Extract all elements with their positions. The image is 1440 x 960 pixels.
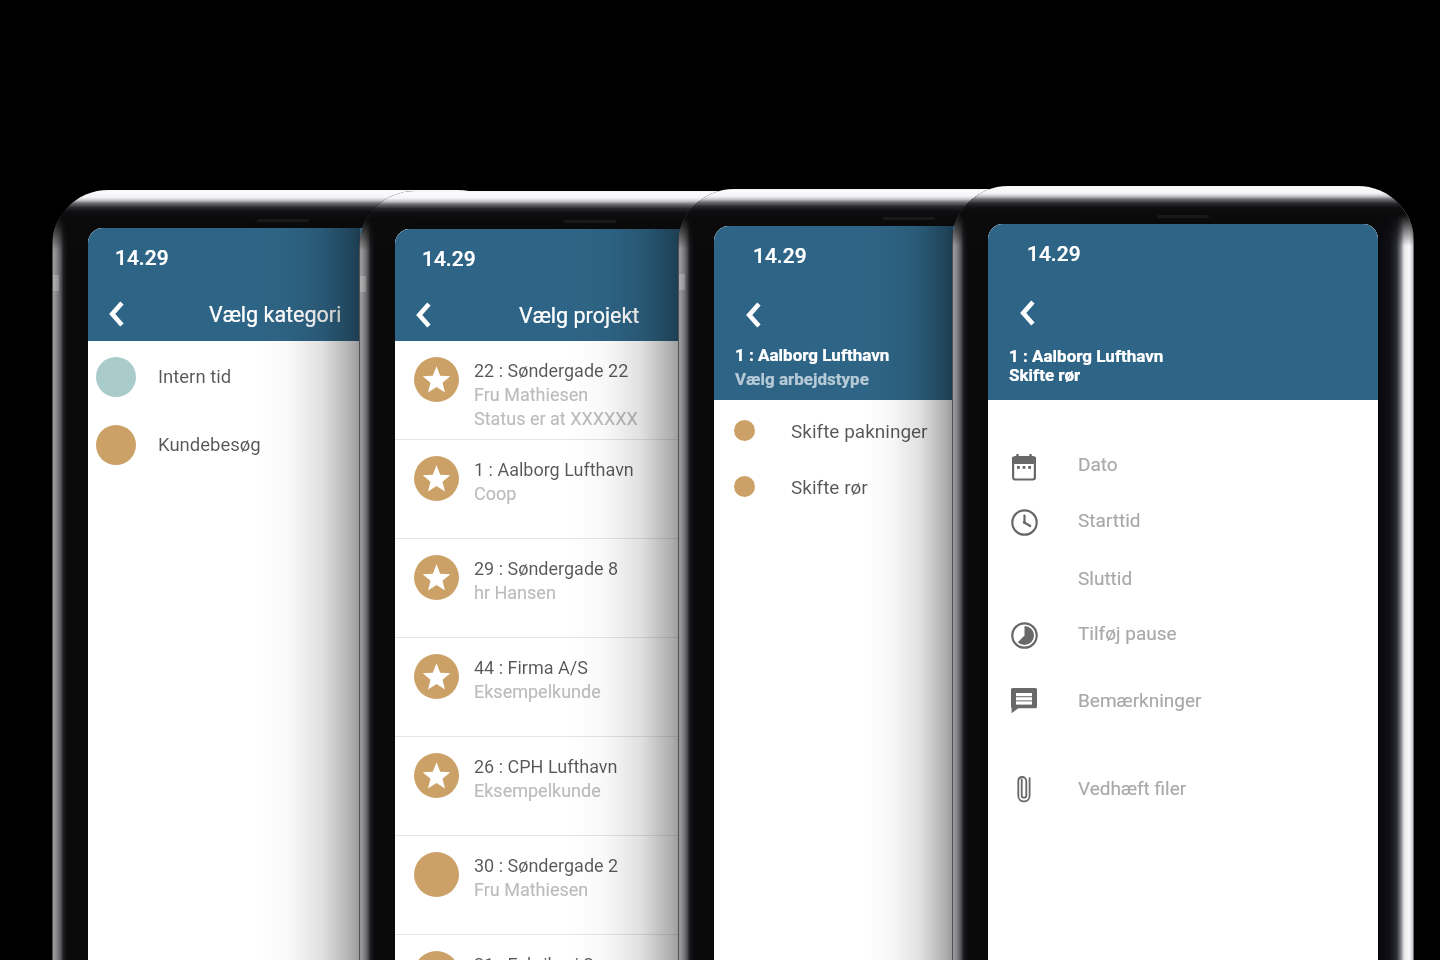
button[interactable]: Dato [988, 436, 1378, 492]
staticText: Eksempelkunde [474, 681, 601, 702]
staticText: Dato [1078, 453, 1118, 475]
staticText: Skifte pakninger [791, 420, 928, 442]
staticText: Vælg projekt [519, 303, 640, 328]
staticText: 14.29 [1027, 242, 1081, 267]
staticText: Vælg arbejdstype [735, 369, 869, 389]
staticText: Intern tid [158, 366, 232, 388]
staticText: Tilføj pause [1078, 622, 1177, 644]
staticText: 44 : Firma A/S [474, 657, 588, 678]
button[interactable]: Back [94, 286, 139, 342]
button[interactable]: Skifte rør [714, 458, 1104, 515]
staticText: Coop [474, 483, 517, 504]
staticText: 14.29 [115, 246, 169, 271]
staticText: 14.29 [753, 244, 807, 269]
button[interactable]: 30 : Søndergade 2 [395, 836, 785, 935]
staticText: 26 : CPH Lufthavn [474, 756, 618, 777]
staticText: Skifte rør [1009, 365, 1081, 385]
staticText: 22 : Søndergade 22 [474, 360, 629, 381]
button[interactable]: Starttid [988, 492, 1378, 548]
button[interactable]: Back [1005, 285, 1050, 341]
staticText: Fru Mathiesen [474, 384, 589, 405]
staticText: 1 : Aalborg Lufthavn [474, 459, 634, 480]
button[interactable]: 31 : Fabrikvej 3 [395, 935, 785, 960]
button[interactable]: 22 : Søndergade 22 [395, 341, 785, 440]
button[interactable]: Back [401, 287, 446, 343]
staticText: 29 : Søndergade 8 [474, 558, 619, 579]
button[interactable]: Kundebesøg [88, 411, 478, 479]
staticText: Skifte rør [791, 476, 868, 498]
button[interactable]: 44 : Firma A/S [395, 638, 785, 737]
button[interactable]: 26 : CPH Lufthavn [395, 737, 785, 836]
button[interactable]: 1 : Aalborg Lufthavn [395, 440, 785, 539]
staticText: 1 : Aalborg Lufthavn [735, 345, 890, 365]
staticText: Status er at XXXXXX [474, 408, 638, 429]
staticText: Bemærkninger [1078, 689, 1202, 711]
button[interactable]: Sluttid [988, 550, 1378, 606]
button[interactable]: Intern tid [88, 343, 478, 411]
button[interactable]: Tilføj pause [988, 605, 1378, 661]
staticText: Kundebesøg [158, 434, 261, 456]
staticText: Starttid [1078, 509, 1141, 531]
button[interactable]: Skifte pakninger [714, 402, 1104, 459]
button[interactable]: Back [731, 287, 776, 343]
staticText: Vælg kategori [209, 302, 342, 327]
button[interactable]: Bemærkninger [988, 672, 1378, 728]
staticText: 14.29 [422, 247, 476, 272]
staticText: Sluttid [1078, 567, 1133, 589]
button[interactable]: 29 : Søndergade 8 [395, 539, 785, 638]
staticText: 1 : Aalborg Lufthavn [1009, 346, 1164, 366]
staticText: Eksempelkunde [474, 780, 601, 801]
staticText: hr Hansen [474, 582, 556, 603]
staticText: Vedhæft filer [1078, 777, 1187, 799]
staticText: 30 : Søndergade 2 [474, 855, 619, 876]
staticText: Fru Mathiesen [474, 879, 589, 900]
button[interactable]: Vedhæft filer [988, 760, 1378, 816]
staticText: 31 : Fabrikvej 3 [474, 954, 594, 960]
